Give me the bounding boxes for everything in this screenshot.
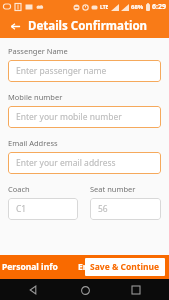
staticText: Seat number [90,184,136,194]
staticText: 6:29 [152,2,166,12]
staticText: Details Confirmation [28,18,148,34]
staticText: Enter your email address [16,157,116,169]
button[interactable]: Recents [127,281,145,299]
staticText: Save & Continue [90,261,160,273]
button[interactable]: Back [5,16,25,36]
button[interactable]: Enter passenger name [8,60,161,82]
button[interactable]: C1 [8,198,78,220]
staticText: Enter passenger name [16,65,107,77]
staticText: C1 [16,203,27,215]
staticText: Email Address [8,138,58,148]
button[interactable]: Home [76,281,94,299]
staticText: Coach [8,184,30,194]
staticText: Entry [78,261,101,273]
staticText: 68% [131,3,144,11]
staticText: LTE [100,4,109,11]
staticText: Enter your mobile number [16,111,122,123]
button[interactable]: Enter your mobile number [8,106,161,128]
button[interactable]: 56 [90,198,161,220]
button[interactable]: Entry [74,257,105,277]
staticText: Passenger Name [8,46,68,56]
button[interactable]: Personal info [0,257,66,277]
staticText: Mobile number [8,92,63,102]
button[interactable]: Save & Continue [85,258,165,276]
staticText: Personal info [2,261,58,273]
button[interactable]: Back [24,281,42,299]
staticText: 56 [98,203,108,215]
button[interactable]: Enter your email address [8,152,161,174]
